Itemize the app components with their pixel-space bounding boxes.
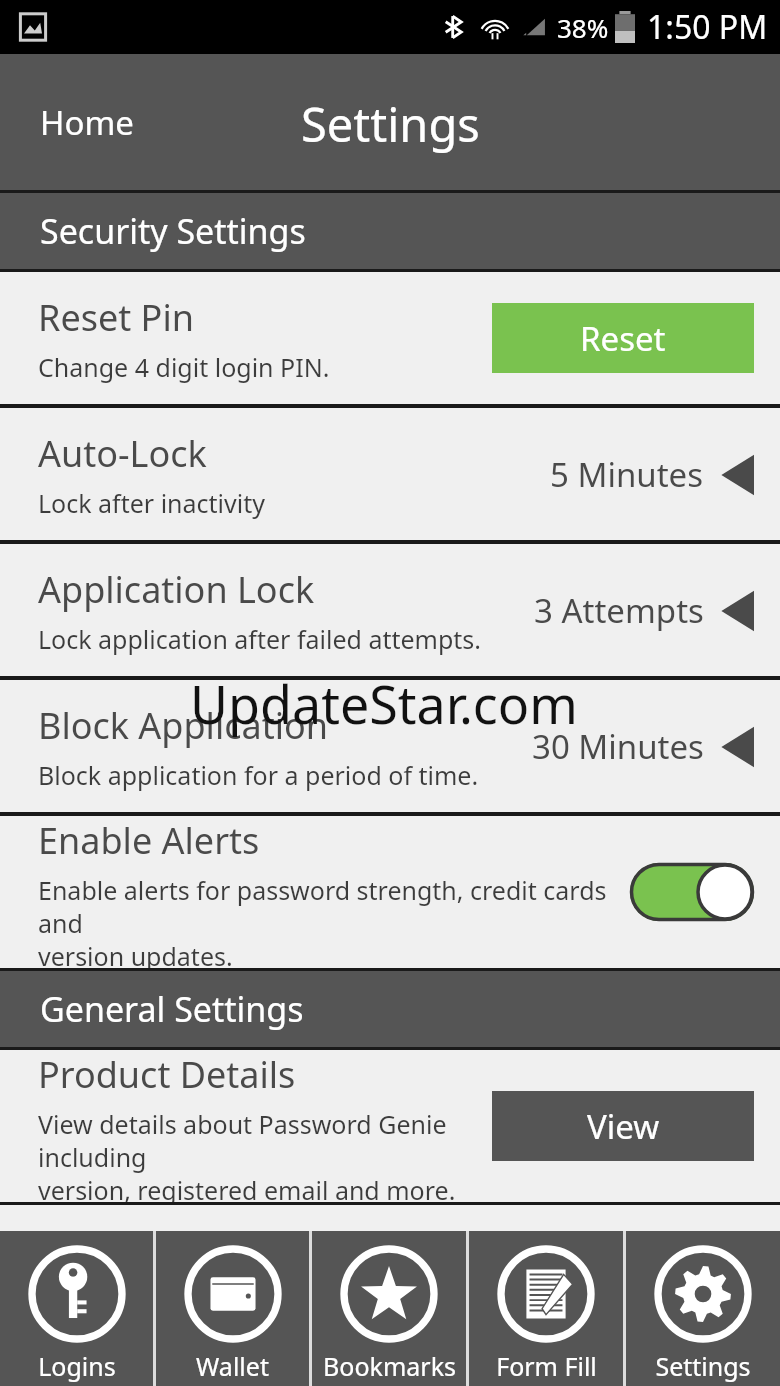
staticText: Settings bbox=[655, 1349, 751, 1383]
button[interactable]: Reset bbox=[492, 303, 754, 373]
staticText: UpdateStar.com bbox=[190, 668, 578, 739]
staticText: Settings bbox=[301, 92, 480, 156]
button[interactable]: Settings bbox=[626, 1231, 780, 1386]
button[interactable]: Bookmarks bbox=[312, 1231, 466, 1386]
staticText: Change 4 digit login PIN. bbox=[38, 350, 330, 384]
staticText: Reset Pin bbox=[38, 293, 194, 342]
other: Change value bbox=[720, 589, 754, 633]
staticText: 38% bbox=[557, 10, 609, 45]
button[interactable]: 3 Attempts bbox=[534, 588, 754, 633]
other: Change value bbox=[720, 725, 754, 769]
staticText: Lock after inactivity bbox=[38, 486, 265, 520]
button[interactable]: Logins bbox=[0, 1231, 153, 1386]
button[interactable]: Home bbox=[24, 90, 150, 155]
button[interactable]: Product Details bbox=[0, 1050, 780, 1202]
staticText: Block application for a period of time. bbox=[38, 758, 479, 792]
button[interactable]: 5 Minutes bbox=[550, 452, 754, 497]
button[interactable]: Form Fill bbox=[469, 1231, 623, 1386]
staticText: Logins bbox=[38, 1349, 116, 1383]
staticText: View bbox=[587, 1104, 660, 1149]
staticText: Enable alerts for password strength, cre… bbox=[38, 873, 630, 968]
staticText: Product Details bbox=[38, 1050, 296, 1099]
staticText: Reset bbox=[580, 316, 666, 361]
staticText: Bookmarks bbox=[323, 1349, 456, 1383]
staticText: Home bbox=[40, 100, 134, 145]
button[interactable]: Enable alerts toggle bbox=[630, 863, 754, 921]
staticText: 3 Attempts bbox=[534, 588, 704, 633]
staticText: 30 Minutes bbox=[532, 724, 704, 769]
staticText: Form Fill bbox=[496, 1349, 597, 1383]
button[interactable]: 30 Minutes bbox=[532, 724, 754, 769]
staticText: Security Settings bbox=[40, 208, 306, 254]
button[interactable]: Block Application bbox=[0, 680, 780, 812]
button[interactable]: View bbox=[492, 1091, 754, 1161]
staticText: Auto-Lock bbox=[38, 429, 207, 478]
staticText: 5 Minutes bbox=[550, 452, 704, 497]
staticText: Enable Alerts bbox=[38, 816, 260, 865]
button[interactable]: Reset Pin bbox=[0, 272, 780, 404]
staticText: General Settings bbox=[40, 986, 304, 1032]
staticText: Wallet bbox=[196, 1349, 269, 1383]
button[interactable]: Enable Alerts bbox=[0, 816, 780, 968]
staticText: Block Application bbox=[38, 701, 328, 750]
button[interactable]: Wallet bbox=[156, 1231, 309, 1386]
staticText: View details about Password Genie includ… bbox=[38, 1107, 492, 1202]
button[interactable]: Auto-Lock bbox=[0, 408, 780, 540]
other: Change value bbox=[720, 453, 754, 497]
staticText: Application Lock bbox=[38, 565, 315, 614]
button[interactable]: Application Lock bbox=[0, 544, 780, 676]
staticText: 1:50 PM bbox=[647, 5, 768, 49]
staticText: Lock application after failed attempts. bbox=[38, 622, 482, 656]
